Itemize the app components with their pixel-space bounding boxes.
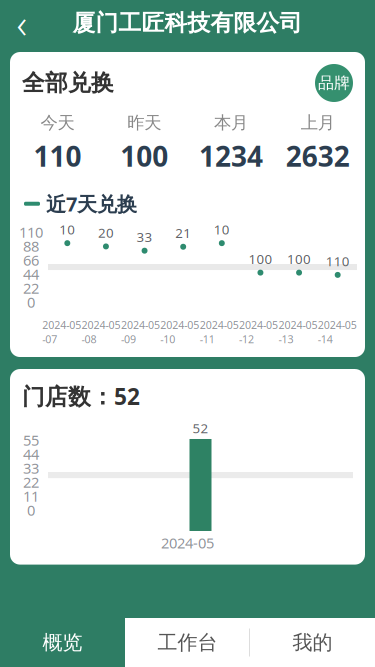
staticText: 110: [19, 222, 43, 242]
staticText: 21: [175, 224, 191, 242]
staticText: 我的: [292, 630, 332, 655]
staticText: 66: [23, 250, 39, 270]
staticText: 上月: [301, 112, 335, 133]
staticText: 昨天: [127, 112, 161, 133]
staticText: 近7天兑换: [46, 190, 137, 217]
staticText: 今天: [40, 112, 74, 133]
button[interactable]: 我的: [250, 618, 375, 667]
staticText: 44: [23, 264, 39, 284]
button[interactable]: 概览: [0, 618, 125, 667]
staticText: 2024-05-14: [318, 318, 357, 346]
staticText: 0: [27, 292, 35, 312]
staticText: 2024-05-12: [239, 318, 278, 346]
staticText: 2024-05-13: [278, 318, 317, 346]
staticText: 22: [23, 472, 39, 492]
button[interactable]: 品牌: [315, 64, 353, 102]
staticText: 2024-05-09: [121, 318, 160, 346]
staticText: 全部兑换: [22, 69, 114, 97]
staticText: 10: [59, 220, 75, 238]
staticText: 工作台: [157, 630, 217, 655]
staticText: 33: [23, 458, 39, 478]
staticText: 20: [98, 224, 114, 241]
staticText: 11: [23, 486, 39, 506]
staticText: 1234: [199, 137, 263, 174]
staticText: 110: [326, 252, 350, 270]
staticText: 100: [287, 250, 311, 268]
staticText: 2024-05-07: [42, 318, 81, 346]
staticText: 门店数：52: [22, 381, 140, 411]
staticText: 33: [137, 228, 153, 246]
staticText: 2632: [286, 137, 350, 174]
staticText: 0: [27, 500, 35, 520]
staticText: 品牌: [318, 73, 350, 93]
staticText: 本月: [214, 112, 248, 133]
staticText: 2024-05-08: [82, 318, 121, 346]
staticText: 厦门工匠科技有限公司: [72, 9, 302, 37]
staticText: 52: [192, 419, 208, 437]
staticText: ‹: [16, 0, 27, 49]
staticText: 100: [120, 137, 168, 174]
staticText: 88: [23, 236, 39, 256]
staticText: 10: [214, 220, 230, 238]
button[interactable]: 工作台: [125, 618, 250, 667]
staticText: 2024-05: [161, 533, 214, 553]
staticText: 概览: [42, 630, 82, 655]
staticText: 2024-05-10: [160, 318, 199, 346]
staticText: 44: [23, 444, 39, 464]
staticText: 100: [248, 250, 272, 268]
button[interactable]: Back: [0, 1, 44, 45]
staticText: 22: [23, 278, 39, 298]
staticText: 110: [33, 137, 81, 174]
staticText: 55: [23, 430, 39, 450]
staticText: 2024-05-11: [200, 318, 239, 346]
